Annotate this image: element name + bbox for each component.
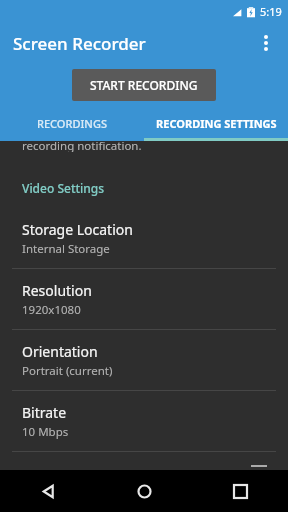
button[interactable]: START RECORDING [72, 69, 216, 101]
button[interactable]: Resolution [0, 269, 288, 329]
button[interactable]: More options [250, 27, 282, 59]
button[interactable]: Storage Location [0, 208, 288, 268]
staticText: 5:19 [260, 4, 282, 19]
staticText: Internal Storage [22, 241, 110, 257]
staticText: RECORDINGS [37, 116, 107, 131]
staticText: recording notification. [22, 138, 142, 152]
staticText: Orientation [22, 342, 98, 361]
button[interactable]: RECORDINGS [0, 106, 144, 141]
staticText: Screen Recorder [13, 32, 146, 55]
button[interactable]: Recents [192, 470, 288, 512]
staticText: 1920x1080 [22, 302, 81, 318]
button[interactable]: RECORDING SETTINGS [144, 106, 288, 141]
staticText: START RECORDING [90, 77, 198, 93]
staticText: Storage Location [22, 220, 133, 239]
staticText: RECORDING SETTINGS [156, 116, 277, 131]
staticText: 10 Mbps [22, 424, 69, 440]
button[interactable]: Record Microphone Audio [0, 452, 288, 470]
staticText: Bitrate [22, 403, 67, 422]
button[interactable]: Home [96, 470, 192, 512]
staticText: Video Settings [22, 180, 105, 196]
staticText: Resolution [22, 281, 92, 300]
button[interactable]: Orientation [0, 330, 288, 390]
staticText: Portrait (current) [22, 363, 113, 379]
button[interactable]: Bitrate [0, 391, 288, 451]
button[interactable]: Back [0, 470, 96, 512]
